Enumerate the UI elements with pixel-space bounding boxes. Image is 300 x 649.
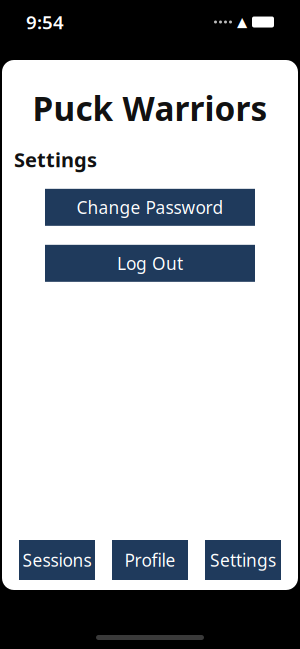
staticText: Puck Warriors bbox=[32, 86, 267, 130]
staticText: Settings bbox=[210, 548, 276, 571]
button[interactable]: Settings bbox=[205, 540, 281, 580]
staticText: Log Out bbox=[117, 252, 183, 275]
button[interactable]: Log Out bbox=[45, 245, 255, 282]
staticText: Profile bbox=[124, 548, 175, 571]
button[interactable]: Sessions bbox=[19, 540, 95, 580]
staticText: ▲ bbox=[237, 14, 247, 29]
button[interactable]: Profile bbox=[112, 540, 188, 580]
staticText: Settings bbox=[14, 146, 97, 173]
staticText: Sessions bbox=[22, 548, 91, 571]
button[interactable]: Change Password bbox=[45, 189, 255, 226]
staticText: 9:54 bbox=[26, 10, 64, 34]
staticText: Change Password bbox=[76, 196, 223, 219]
